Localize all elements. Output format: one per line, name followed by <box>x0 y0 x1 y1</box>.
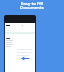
button[interactable]: Back <box>21 56 29 61</box>
staticText: Easy to Fill Documents <box>0 1 64 11</box>
button[interactable]: Easy to Fill Documents <box>0 1 64 11</box>
button[interactable]: Back <box>4 15 36 72</box>
